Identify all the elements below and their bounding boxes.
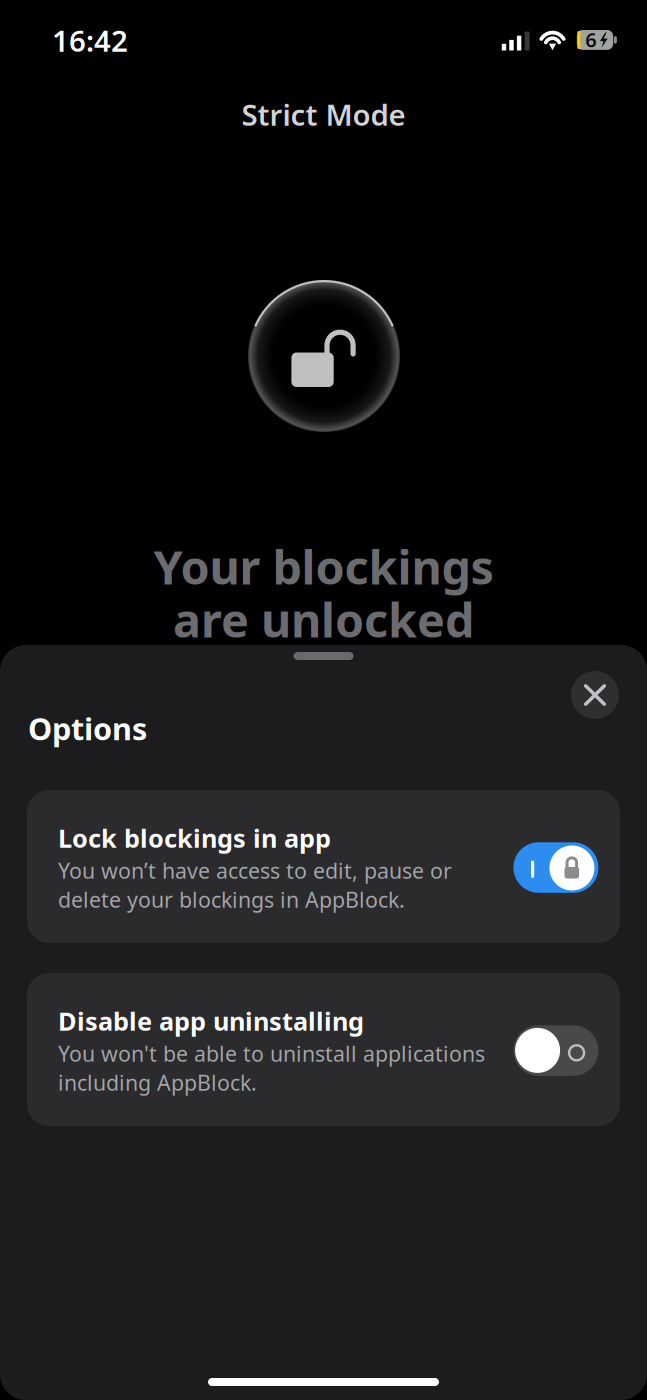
staticText: including AppBlock. bbox=[58, 1068, 257, 1097]
staticText: Disable app uninstalling bbox=[58, 1004, 364, 1038]
button[interactable]: Disable app uninstalling bbox=[27, 973, 620, 1126]
button[interactable]: Lock blockings in app bbox=[27, 790, 620, 943]
staticText: You won't be able to uninstall applicati… bbox=[58, 1039, 485, 1068]
staticText: Options bbox=[28, 708, 147, 749]
staticText: Lock blockings in app bbox=[58, 821, 331, 855]
staticText: 6 bbox=[585, 26, 596, 53]
staticText: Strict Mode bbox=[241, 95, 405, 134]
button[interactable]: Close bbox=[571, 671, 619, 719]
staticText: 16:42 bbox=[52, 21, 128, 60]
staticText: delete your blockings in AppBlock. bbox=[58, 885, 405, 914]
staticText: are unlocked bbox=[173, 588, 474, 650]
staticText: You won’t have access to edit, pause or bbox=[58, 856, 452, 885]
staticText: Your blockings bbox=[153, 535, 493, 597]
